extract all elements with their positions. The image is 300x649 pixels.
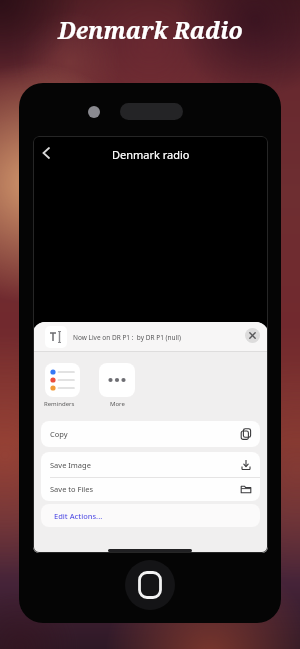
staticText: Save to Files (50, 484, 94, 494)
staticText: More (110, 400, 125, 408)
button[interactable] (99, 363, 135, 397)
staticText: Copy (50, 429, 68, 439)
button[interactable]: Edit Actions... (41, 504, 260, 527)
staticText: Save Image (50, 460, 91, 470)
button[interactable] (245, 328, 260, 343)
staticText: Denmark Radio (58, 14, 243, 45)
button[interactable]: Copy (41, 421, 260, 447)
button[interactable]: Save to Files (41, 477, 260, 501)
staticText: Reminders (44, 400, 75, 408)
button[interactable] (41, 147, 53, 159)
staticText: Edit Actions... (54, 511, 103, 521)
staticText: Now Live on DR P1 : by DR P1 (null) (73, 333, 181, 342)
button[interactable] (45, 363, 80, 397)
button[interactable] (125, 560, 175, 610)
staticText: Denmark radio (112, 147, 190, 162)
button[interactable]: Save Image (41, 452, 260, 477)
